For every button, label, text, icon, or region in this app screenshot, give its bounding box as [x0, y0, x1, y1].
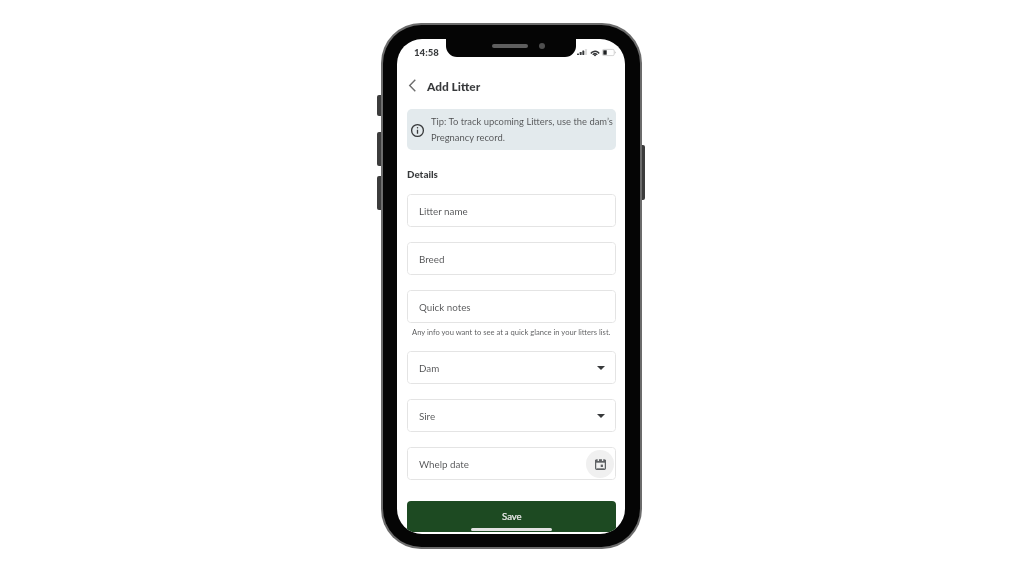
staticText: Whelp date	[419, 458, 469, 470]
staticText: Breed	[419, 253, 445, 265]
staticText: Add Litter	[427, 79, 481, 93]
button[interactable]: Quick notes	[407, 290, 616, 323]
button[interactable]: Dam	[407, 351, 616, 384]
staticText: Quick notes	[419, 301, 471, 313]
button[interactable]: Sire	[407, 399, 616, 432]
staticText: Any info you want to see at a quick glan…	[412, 327, 611, 336]
button[interactable]: Whelp date	[407, 447, 616, 480]
button[interactable]: Tip: To track upcoming Litters, use the …	[407, 109, 616, 150]
button[interactable]: Pick date	[586, 450, 614, 478]
staticText: Litter name	[419, 205, 468, 217]
button[interactable]: Litter name	[407, 194, 616, 227]
staticText: Tip: To track upcoming Litters, use the …	[431, 116, 616, 143]
staticText: Sire	[419, 410, 436, 422]
staticText: Save	[502, 511, 522, 523]
button[interactable]: Save	[407, 501, 616, 532]
staticText: Details	[407, 168, 438, 180]
button[interactable]: Back	[406, 77, 419, 94]
staticText: 14:58	[414, 47, 439, 59]
button[interactable]: Breed	[407, 242, 616, 275]
staticText: Dam	[419, 362, 440, 374]
